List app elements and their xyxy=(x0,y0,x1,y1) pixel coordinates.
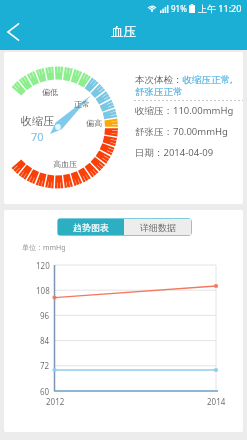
button[interactable]: 详细数据 xyxy=(124,219,191,235)
staticText: 60 xyxy=(40,386,50,397)
staticText: 2014 xyxy=(207,396,226,407)
staticText: 120 xyxy=(36,260,50,271)
staticText: 舒张压：70.00mmHg xyxy=(135,125,228,138)
staticText: 正常 xyxy=(74,99,90,109)
staticText: 偏低 xyxy=(42,87,58,97)
staticText: 84 xyxy=(40,335,50,346)
staticText: 高血压 xyxy=(53,159,77,169)
staticText: 108 xyxy=(36,285,50,296)
staticText: 血压 xyxy=(111,24,136,40)
staticText: 70 xyxy=(31,129,44,144)
staticText: 偏高 xyxy=(86,118,102,128)
staticText: 91% xyxy=(171,3,187,14)
staticText: 详细数据 xyxy=(140,222,176,233)
staticText: 本次体检：收缩压正常, 舒张压正常 xyxy=(135,73,243,98)
staticText: 96 xyxy=(40,310,50,321)
staticText: 收缩压 xyxy=(21,114,54,128)
button[interactable]: Back xyxy=(1,16,25,47)
staticText: 单位：mmHg xyxy=(22,243,66,253)
button[interactable]: 趋势图表 xyxy=(58,219,124,235)
staticText: 收缩压：110.00mmHg xyxy=(135,104,234,117)
staticText: 日期：2014-04-09 xyxy=(135,146,214,159)
staticText: 72 xyxy=(40,360,50,371)
staticText: 上午 11:20 xyxy=(198,2,242,14)
staticText: 2012 xyxy=(46,396,65,407)
staticText: 趋势图表 xyxy=(73,222,109,233)
